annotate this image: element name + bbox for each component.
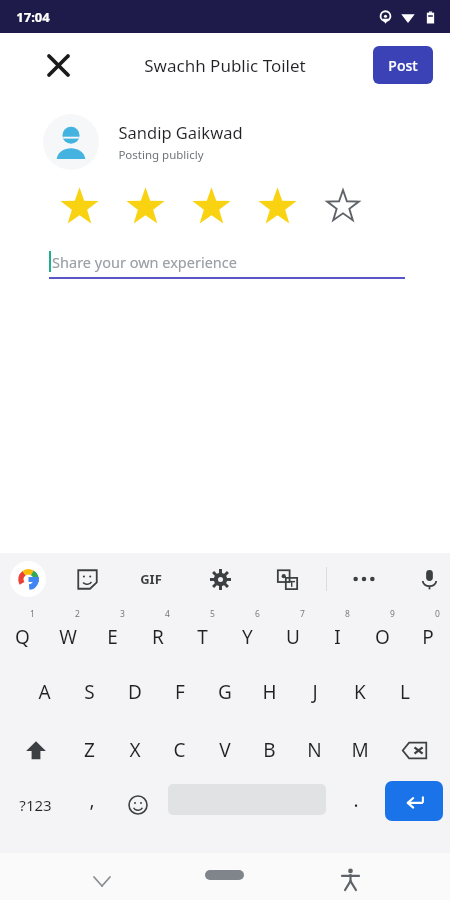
staticText: X [129, 737, 141, 763]
staticText: 2 [75, 608, 80, 620]
button[interactable]: 1 [0, 605, 45, 663]
staticText: 7 [300, 608, 305, 620]
button[interactable]: Rate 2 star [121, 185, 169, 227]
button[interactable]: 6 [225, 605, 270, 663]
button[interactable]: V [202, 721, 247, 779]
staticText: W [59, 624, 77, 650]
button[interactable]: Voice input [414, 564, 444, 594]
staticText: N [307, 737, 322, 763]
button[interactable]: ?123 [4, 783, 66, 827]
staticText: Sandip Gaikwad [118, 121, 243, 143]
button[interactable]: B [247, 721, 292, 779]
button[interactable]: Rate 5 star [319, 185, 367, 227]
button[interactable]: Enter [385, 781, 443, 821]
button[interactable]: J [292, 663, 337, 721]
button[interactable]: 5 [180, 605, 225, 663]
staticText: J [312, 679, 318, 705]
staticText: A [38, 679, 51, 705]
staticText: 5 [210, 608, 215, 620]
staticText: ?123 [19, 795, 52, 815]
button[interactable]: 3 [90, 605, 135, 663]
staticText: E [107, 624, 118, 650]
staticText: M [351, 737, 369, 763]
button[interactable]: Stickers [72, 564, 102, 594]
button[interactable]: Rate 3 star [187, 185, 235, 227]
staticText: Q [15, 624, 30, 650]
button[interactable]: Sandip Gaikwad [0, 106, 450, 178]
button[interactable]: Close [38, 45, 78, 85]
staticText: Post [388, 56, 418, 75]
button[interactable]: C [157, 721, 202, 779]
button[interactable]: Backspace [384, 721, 444, 779]
staticText: 0 [435, 608, 440, 620]
button[interactable]: Comma [70, 783, 114, 827]
staticText: P [422, 624, 434, 650]
button[interactable]: N [292, 721, 337, 779]
button[interactable]: Z [67, 721, 112, 779]
button[interactable]: Share your own experience [0, 243, 450, 287]
staticText: R [152, 624, 164, 650]
button[interactable]: G [202, 663, 247, 721]
staticText: 8 [345, 608, 350, 620]
button[interactable]: K [337, 663, 382, 721]
button[interactable]: Rate 4 star [253, 185, 301, 227]
staticText: 1 [30, 608, 35, 620]
staticText: Posting publicly [118, 147, 204, 163]
staticText: V [219, 737, 231, 763]
staticText: Z [84, 737, 95, 763]
button[interactable]: Rate 1 star [55, 185, 103, 227]
button[interactable]: M [337, 721, 382, 779]
staticText: T [197, 624, 208, 650]
button[interactable]: Home [205, 870, 244, 880]
staticText: U [286, 624, 300, 650]
button[interactable]: H [247, 663, 292, 721]
button[interactable]: Translate [272, 564, 302, 594]
staticText: 3 [120, 608, 125, 620]
button[interactable]: L [382, 663, 427, 721]
staticText: K [354, 679, 366, 705]
staticText: I [334, 624, 341, 650]
button[interactable]: 7 [270, 605, 315, 663]
button[interactable]: F [157, 663, 202, 721]
staticText: GIF [140, 570, 162, 588]
button[interactable]: Keyboard settings [205, 564, 235, 594]
button[interactable]: Hide keyboard [82, 861, 122, 900]
staticText: O [375, 624, 390, 650]
button[interactable]: Accessibility [330, 859, 370, 899]
button[interactable]: Shift [6, 721, 66, 779]
staticText: 6 [255, 608, 260, 620]
staticText: G [218, 679, 232, 705]
staticText: 17:04 [16, 8, 50, 26]
staticText: Share your own experience [52, 252, 237, 272]
button[interactable]: GIF [131, 566, 171, 592]
button[interactable]: D [112, 663, 157, 721]
button[interactable]: 8 [315, 605, 360, 663]
button[interactable]: 9 [360, 605, 405, 663]
staticText: . [353, 787, 359, 813]
button[interactable]: Post [373, 46, 433, 84]
button[interactable]: S [67, 663, 112, 721]
button[interactable]: Emoji [116, 783, 160, 827]
staticText: , [89, 787, 95, 813]
staticText: D [128, 679, 142, 705]
button[interactable]: More options [345, 567, 383, 591]
staticText: S [84, 679, 95, 705]
staticText: 4 [165, 608, 170, 620]
staticText: C [173, 737, 186, 763]
button[interactable]: Google search [10, 561, 46, 597]
staticText: F [175, 679, 185, 705]
staticText: H [262, 679, 277, 705]
button[interactable]: 4 [135, 605, 180, 663]
staticText: 9 [390, 608, 395, 620]
staticText: Y [242, 624, 253, 650]
button[interactable]: 2 [45, 605, 90, 663]
staticText: L [400, 679, 410, 705]
staticText: Swachh Public Toilet [144, 54, 306, 77]
button[interactable]: A [22, 663, 67, 721]
button[interactable]: Period [336, 783, 376, 827]
button[interactable]: 0 [405, 605, 450, 663]
button[interactable]: X [112, 721, 157, 779]
staticText: B [263, 737, 276, 763]
